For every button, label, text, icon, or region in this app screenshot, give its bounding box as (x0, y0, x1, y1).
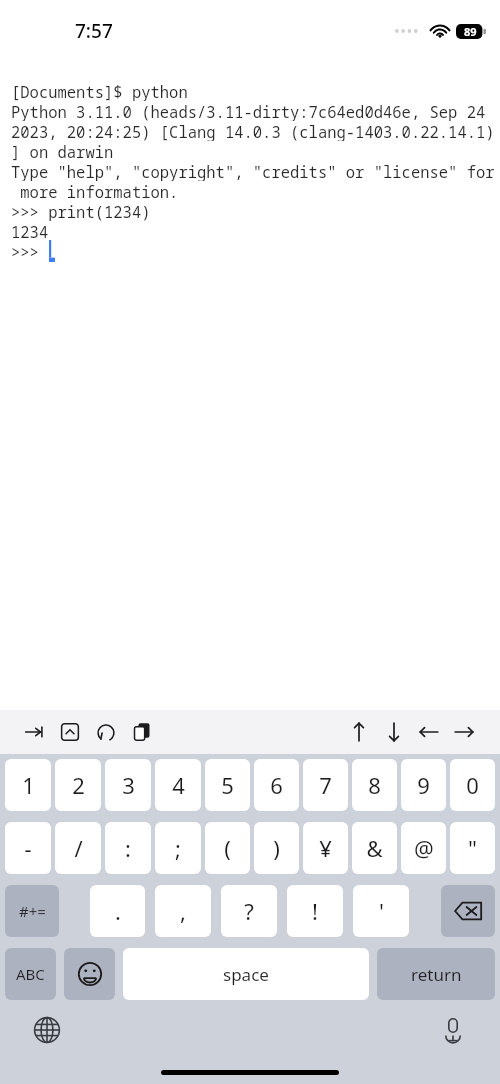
button[interactable]: ) (254, 822, 299, 874)
staticText: 2023, 20:24:25) [Clang 14.0.3 (clang-140… (11, 121, 495, 141)
button[interactable]: 4 (155, 759, 201, 811)
button[interactable]: Dictation (436, 1013, 470, 1047)
button[interactable]: Undo (94, 720, 118, 744)
staticText: 1234 (11, 221, 49, 241)
button[interactable]: ? (221, 885, 277, 937)
button[interactable]: Up (347, 720, 371, 744)
staticText: / (74, 833, 83, 863)
button[interactable]: space (123, 948, 369, 1000)
button[interactable]: ; (155, 822, 201, 874)
staticText: & (366, 833, 383, 863)
button[interactable]: Down (382, 720, 406, 744)
staticText: 9 (417, 770, 430, 800)
staticText: ; (175, 833, 181, 863)
staticText: , (180, 896, 186, 926)
staticText: >>> (11, 241, 49, 261)
button[interactable]: return (377, 948, 495, 1000)
button[interactable]: 2 (55, 759, 101, 811)
button[interactable]: Backspace (441, 885, 495, 937)
button[interactable]: Emoji (64, 948, 115, 1000)
staticText: return (411, 963, 462, 986)
staticText: ) (273, 833, 280, 863)
button[interactable]: / (55, 822, 101, 874)
staticText: space (223, 963, 269, 986)
button[interactable]: . (90, 885, 145, 937)
button[interactable]: @ (401, 822, 446, 874)
staticText: 2 (72, 770, 85, 800)
staticText: #+= (19, 901, 46, 921)
button[interactable]: 1 (5, 759, 51, 811)
button[interactable]: Left (417, 720, 441, 744)
staticText: ] on darwin (11, 141, 114, 161)
button[interactable]: ABC (5, 948, 56, 1000)
staticText: ABC (16, 964, 45, 984)
staticText: 6 (270, 770, 283, 800)
staticText: Type "help", "copyright", "credits" or "… (11, 161, 495, 181)
staticText: . (115, 896, 121, 926)
button[interactable]: 8 (352, 759, 397, 811)
staticText: ! (312, 896, 318, 926)
button[interactable]: 3 (105, 759, 151, 811)
staticText: 5 (221, 770, 234, 800)
button[interactable]: : (105, 822, 151, 874)
button[interactable]: Change keyboard language (30, 1013, 64, 1047)
button[interactable]: " (450, 822, 495, 874)
staticText: [Documents]$ python (11, 81, 188, 101)
button[interactable]: #+= (5, 885, 59, 937)
button[interactable]: ¥ (303, 822, 348, 874)
button[interactable]: Right (452, 720, 476, 744)
staticText: >>> print(1234) (11, 201, 151, 221)
button[interactable]: Paste (130, 720, 154, 744)
button[interactable]: - (5, 822, 51, 874)
button[interactable]: ! (287, 885, 343, 937)
staticText: more information. (11, 181, 179, 201)
staticText: 89 (464, 24, 477, 39)
button[interactable]: Control (58, 720, 82, 744)
staticText: ( (224, 833, 231, 863)
button[interactable]: 9 (401, 759, 446, 811)
staticText: : (125, 833, 131, 863)
staticText: " (468, 833, 477, 863)
staticText: ¥ (319, 833, 332, 863)
button[interactable]: ( (205, 822, 250, 874)
staticText: 7:57 (75, 18, 113, 44)
button[interactable]: 0 (450, 759, 495, 811)
button[interactable]: 6 (254, 759, 299, 811)
button[interactable]: & (352, 822, 397, 874)
staticText: 3 (122, 770, 135, 800)
staticText: 0 (466, 770, 479, 800)
staticText: 1 (22, 770, 35, 800)
staticText: ? (244, 896, 254, 926)
staticText: Python 3.11.0 (heads/3.11-dirty:7c64ed0d… (11, 101, 486, 121)
button[interactable]: , (155, 885, 211, 937)
staticText: - (24, 833, 32, 863)
button[interactable]: Tab (22, 720, 46, 744)
button[interactable]: 7 (303, 759, 348, 811)
staticText: 8 (368, 770, 381, 800)
button[interactable]: 5 (205, 759, 250, 811)
button[interactable]: ' (353, 885, 409, 937)
staticText: ' (379, 896, 384, 926)
staticText: @ (414, 833, 434, 863)
staticText: 4 (172, 770, 185, 800)
staticText: 7 (319, 770, 332, 800)
